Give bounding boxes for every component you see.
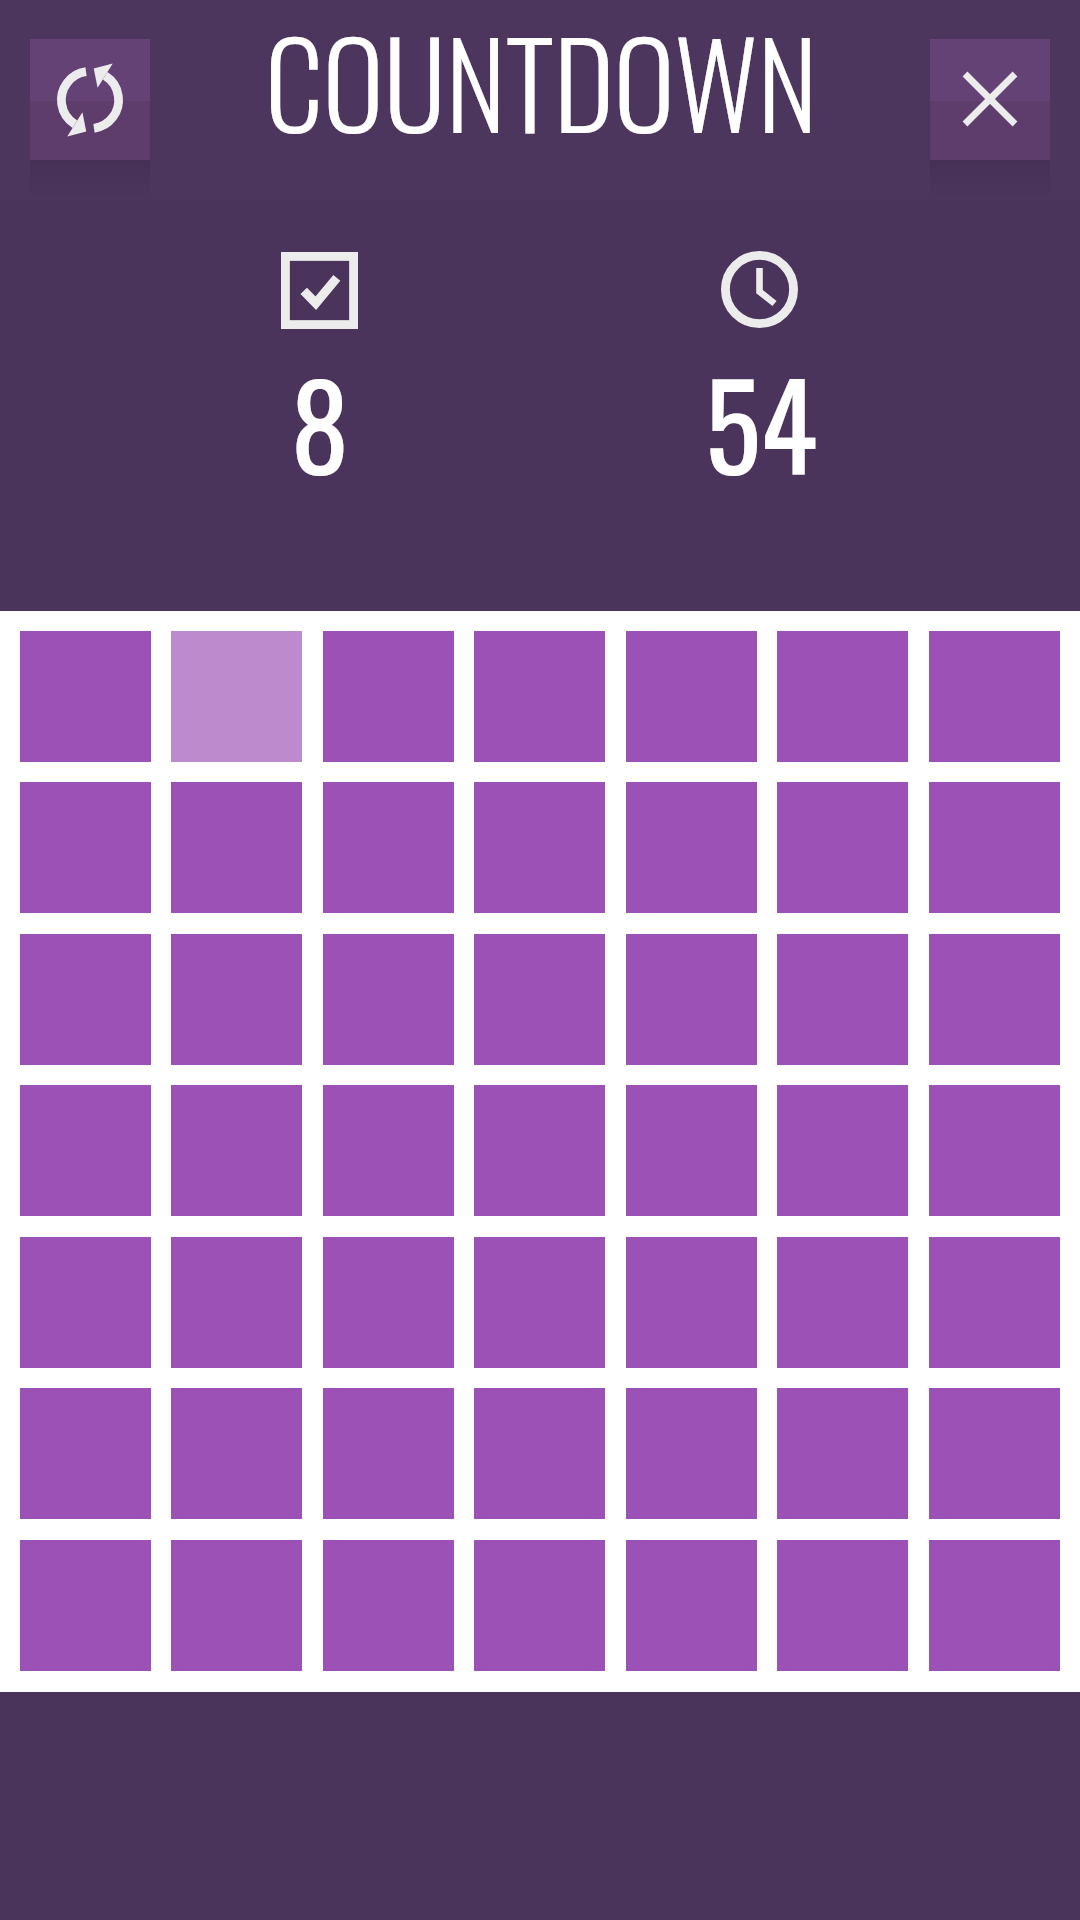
staticText: 54 (561, 335, 961, 495)
staticText: COUNTDOWN (1, 0, 1080, 166)
staticText: 8 (120, 335, 520, 495)
button[interactable]: Restart game (30, 39, 150, 160)
button[interactable]: Close (930, 39, 1050, 160)
